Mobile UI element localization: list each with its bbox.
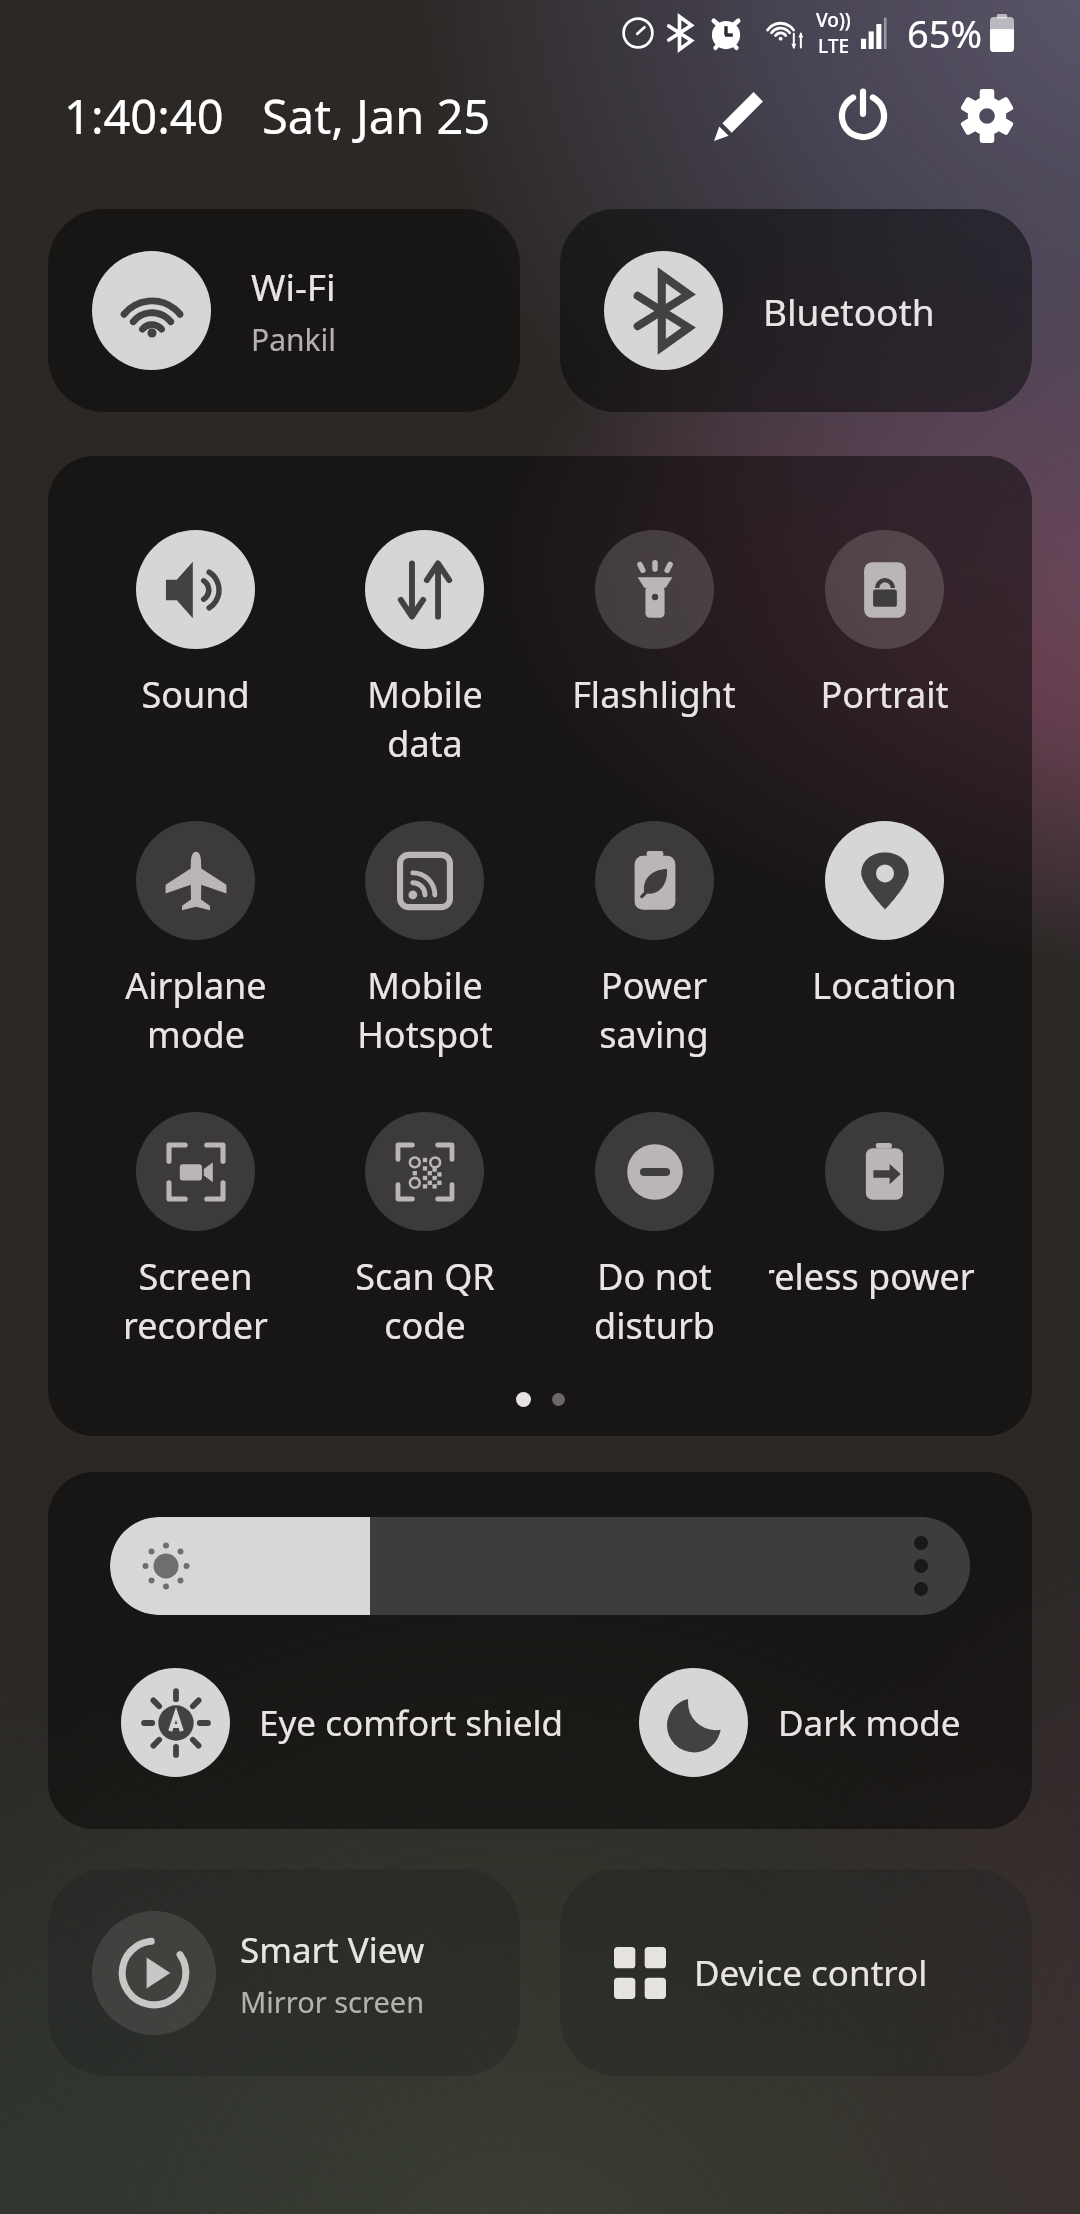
staticText: Bluetooth bbox=[763, 286, 935, 336]
staticText: Vo)) bbox=[816, 7, 851, 33]
staticText: Airplane mode bbox=[125, 961, 267, 1058]
staticText: Flashlight bbox=[572, 670, 736, 719]
staticText: Power saving bbox=[599, 961, 709, 1058]
button[interactable]: Scan QR code bbox=[310, 1112, 539, 1349]
button[interactable]: Wi-Fi bbox=[48, 209, 520, 412]
button[interactable]: Location bbox=[769, 821, 999, 1010]
button[interactable]: Mobile Hotspot bbox=[310, 821, 539, 1058]
button[interactable]: Power off bbox=[814, 67, 912, 165]
button[interactable]: Dark mode bbox=[639, 1668, 1032, 1777]
button[interactable]: Power saving bbox=[539, 821, 769, 1058]
staticText: LTE bbox=[818, 33, 850, 59]
staticText: Smart View bbox=[240, 1926, 425, 1974]
staticText: Sound bbox=[141, 670, 250, 719]
button[interactable]: Edit quick settings bbox=[690, 67, 788, 165]
staticText: Mobile Hotspot bbox=[357, 961, 493, 1058]
staticText: 65% bbox=[907, 7, 983, 59]
button[interactable]: Screen recorder bbox=[81, 1112, 310, 1349]
button[interactable]: Device control bbox=[560, 1869, 1032, 2076]
staticText: Sat, Jan 25 bbox=[262, 84, 491, 148]
staticText: Pankil bbox=[251, 319, 337, 360]
button[interactable]: More brightness options bbox=[904, 1531, 938, 1601]
staticText: Portrait bbox=[820, 670, 949, 719]
staticText: Scan QR code bbox=[355, 1252, 495, 1349]
staticText: Screen recorder bbox=[123, 1252, 268, 1349]
button[interactable]: Eye comfort shield bbox=[121, 1668, 639, 1777]
staticText: Wireless power bbox=[769, 1252, 975, 1300]
button[interactable]: Do not disturb bbox=[539, 1112, 769, 1349]
button[interactable]: Sound bbox=[81, 530, 310, 719]
staticText: Mobile data bbox=[367, 670, 483, 767]
button[interactable]: More brightness options bbox=[110, 1517, 970, 1615]
button[interactable]: Mobile data bbox=[310, 530, 539, 767]
staticText: Wi-Fi bbox=[251, 261, 336, 311]
button[interactable]: Flashlight bbox=[539, 530, 769, 719]
staticText: Eye comfort shield bbox=[259, 1699, 563, 1747]
button[interactable]: Settings bbox=[938, 67, 1036, 165]
button[interactable]: Smart View bbox=[48, 1869, 520, 2076]
button[interactable]: Wireless power bbox=[769, 1112, 999, 1300]
staticText: Dark mode bbox=[778, 1699, 961, 1747]
staticText: Device control bbox=[694, 1949, 928, 1997]
staticText: 1:40:40 bbox=[64, 84, 224, 148]
staticText: Location bbox=[812, 961, 957, 1010]
staticText: Do not disturb bbox=[594, 1252, 715, 1349]
staticText: Mirror screen bbox=[240, 1982, 425, 2021]
button[interactable]: Airplane mode bbox=[81, 821, 310, 1058]
button[interactable]: Portrait bbox=[769, 530, 999, 719]
button[interactable]: Bluetooth bbox=[560, 209, 1032, 412]
